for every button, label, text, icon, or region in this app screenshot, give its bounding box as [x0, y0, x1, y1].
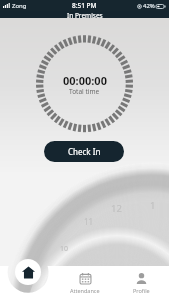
staticText: 11: [84, 216, 94, 227]
button[interactable]: Check In: [44, 141, 124, 162]
staticText: 12: [111, 202, 122, 215]
staticText: Total time: [69, 87, 100, 96]
staticText: Zong: [12, 2, 27, 10]
staticText: Attendance: [70, 287, 100, 294]
button[interactable]: Home: [15, 259, 41, 285]
staticText: Profile: [133, 287, 150, 294]
staticText: 10: [60, 244, 69, 254]
staticText: 00:00:00: [63, 73, 107, 88]
staticText: Check In: [68, 146, 101, 157]
button[interactable]: Attendance: [57, 266, 113, 300]
staticText: 8:51 PM: [72, 1, 97, 10]
staticText: 1: [150, 199, 156, 212]
button[interactable]: Profile: [113, 266, 169, 300]
staticText: 42%: [143, 2, 155, 10]
staticText: In Premises: [67, 11, 103, 18]
